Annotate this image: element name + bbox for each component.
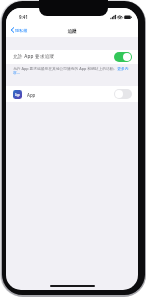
staticText: 追蹤 — [6, 29, 138, 35]
button[interactable]: 隱私權 — [10, 26, 29, 34]
staticText: 9:41 — [19, 14, 28, 20]
button[interactable]: App — [6, 86, 138, 102]
staticText: 隱私權 — [15, 28, 28, 33]
button[interactable]: Switch on — [114, 52, 132, 62]
staticText: 允許 App 要求追蹤 — [13, 53, 55, 59]
staticText: App — [27, 92, 36, 98]
staticText: 允許 App 要求追蹤您在其他公司擁有的 App 和網站上的活動。更多內容… — [13, 66, 132, 76]
button[interactable]: Switch off — [114, 89, 132, 99]
button[interactable]: 允許 App 要求追蹤 — [6, 50, 138, 64]
staticText: App — [15, 93, 21, 97]
